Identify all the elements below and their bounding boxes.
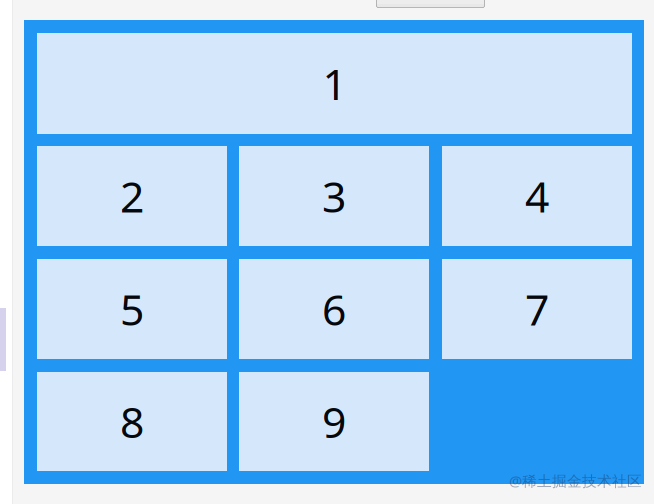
button[interactable]: 5 xyxy=(37,259,227,359)
button[interactable]: 4 xyxy=(442,146,632,246)
button[interactable]: 6 xyxy=(239,259,429,359)
staticText: 2 xyxy=(120,168,144,224)
staticText: 6 xyxy=(322,281,346,337)
button[interactable]: 1 xyxy=(37,33,632,134)
staticText: 8 xyxy=(120,393,144,450)
button[interactable]: 8 xyxy=(37,372,227,471)
button[interactable]: 9 xyxy=(239,372,429,471)
staticText: 7 xyxy=(525,281,549,337)
button[interactable]: Toolbar button xyxy=(376,0,485,8)
staticText: 4 xyxy=(525,168,549,224)
staticText: 1 xyxy=(322,55,346,112)
button[interactable]: 7 xyxy=(442,259,632,359)
staticText: @稀土掘金技术社区 xyxy=(509,471,642,490)
staticText: 3 xyxy=(322,168,346,224)
button[interactable]: 3 xyxy=(239,146,429,246)
staticText: 9 xyxy=(322,393,346,450)
button[interactable]: 2 xyxy=(37,146,227,246)
staticText: 5 xyxy=(120,281,144,337)
